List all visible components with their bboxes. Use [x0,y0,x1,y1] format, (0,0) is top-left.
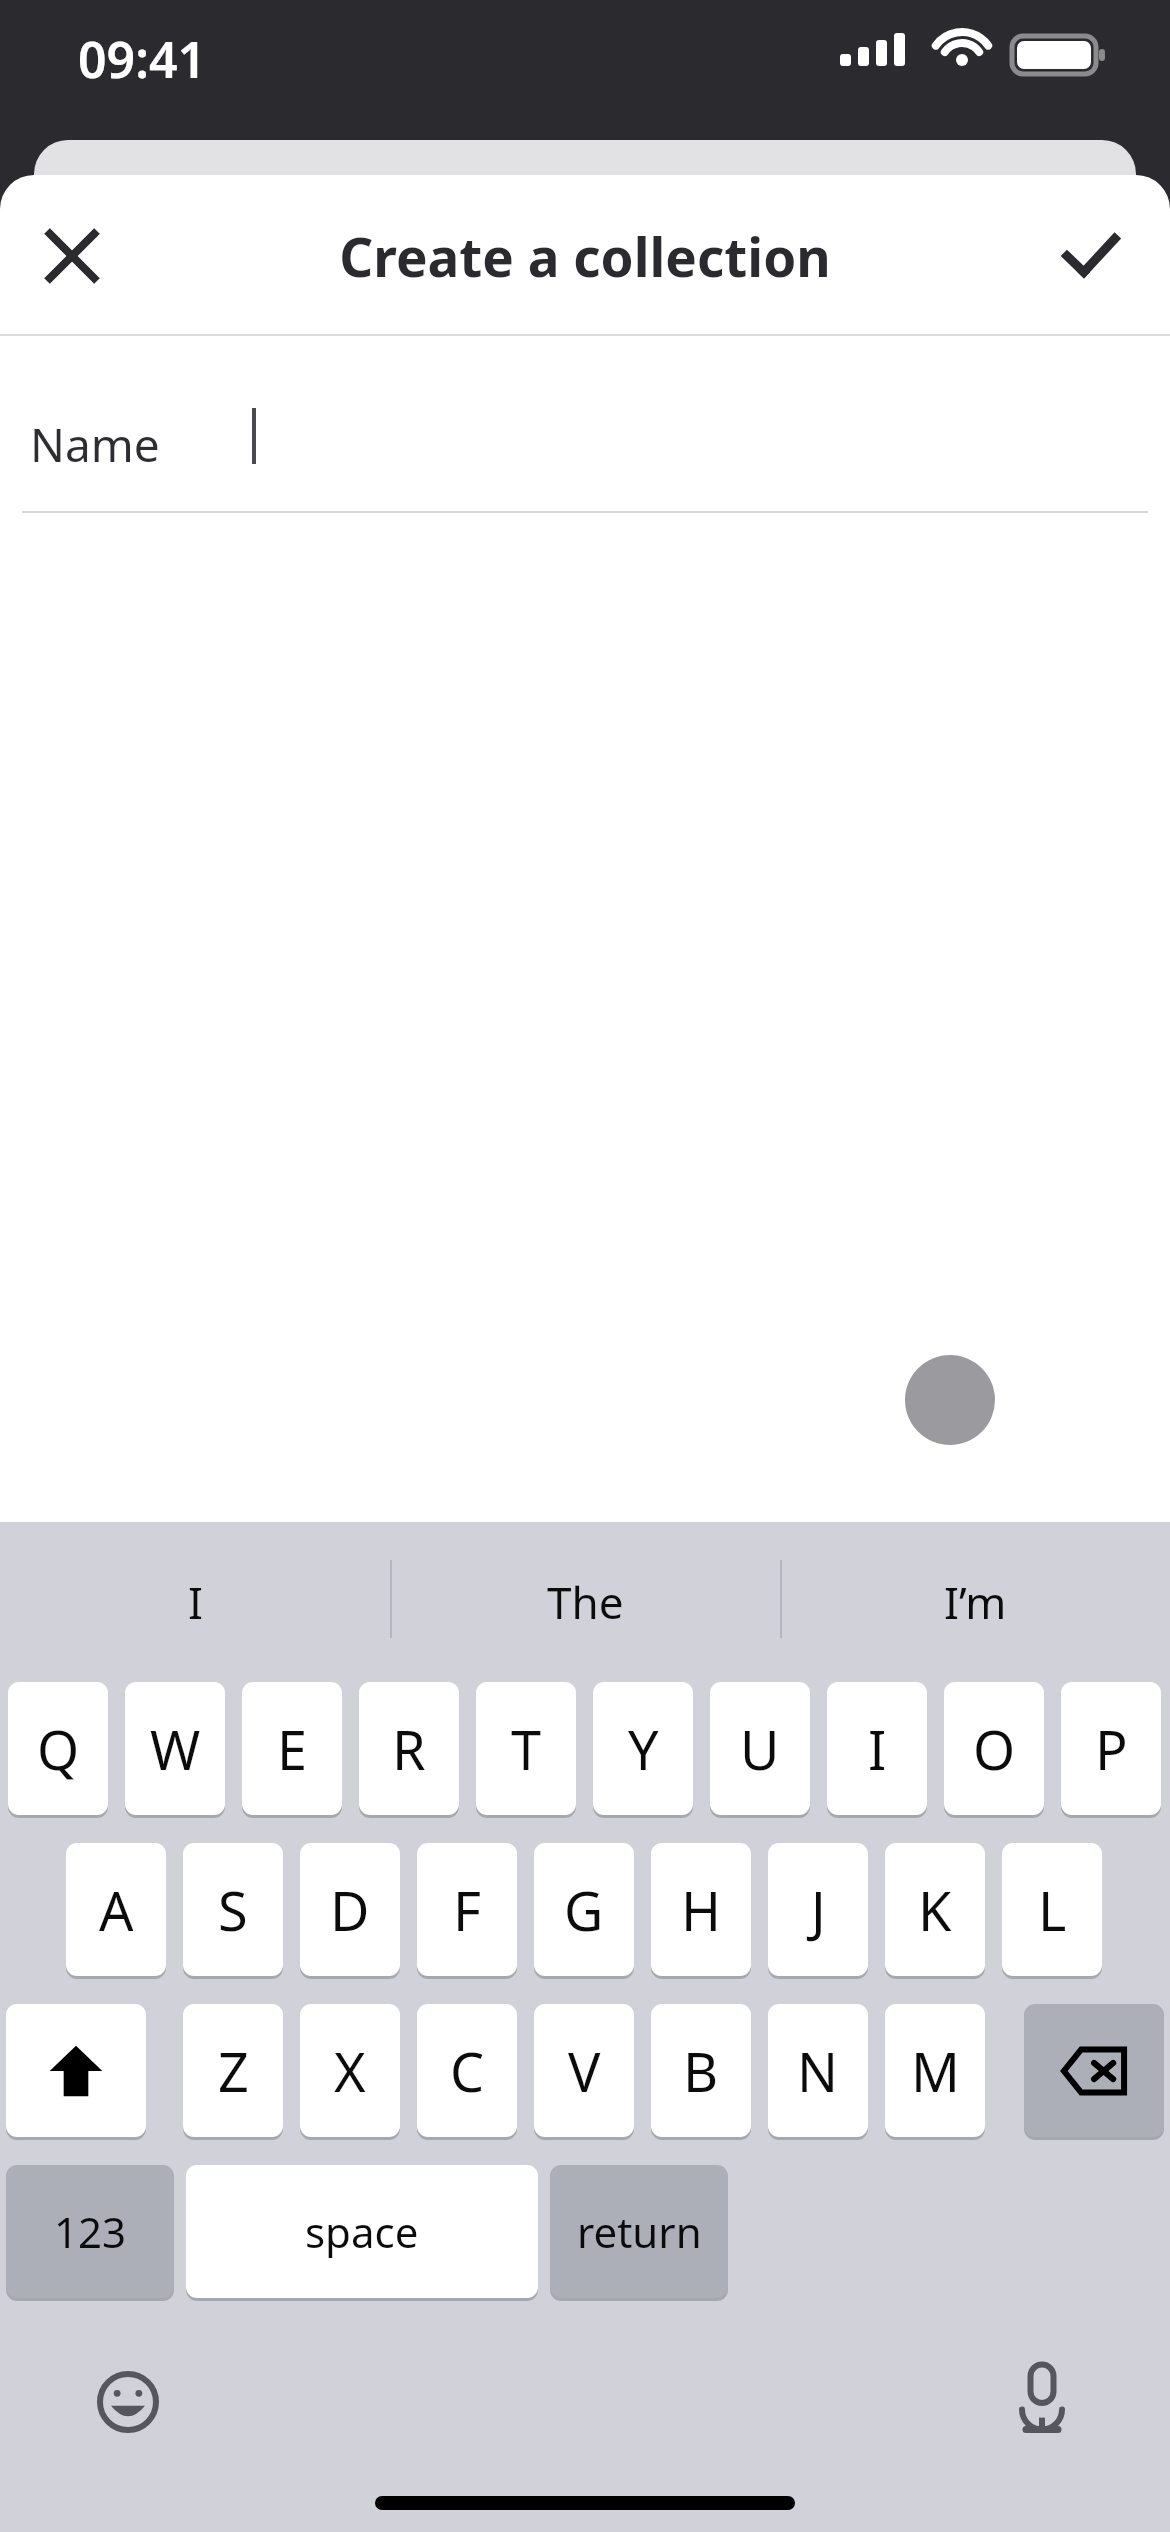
button[interactable]: I’m [780,1522,1170,1682]
button[interactable]: Close [10,194,134,318]
staticText: space [305,2203,419,2260]
staticText: Name [30,413,160,476]
staticText: T [511,1712,542,1786]
staticText: Y [628,1712,659,1786]
button[interactable]: Shift [6,2004,146,2137]
button[interactable]: M [885,2004,985,2137]
staticText: K [918,1873,952,1947]
staticText: J [811,1873,826,1947]
button[interactable]: X [300,2004,400,2137]
button[interactable]: Name [0,336,1170,513]
staticText: H [681,1873,722,1947]
staticText: Create a collection [339,220,831,292]
staticText: Z [218,2034,249,2108]
staticText: F [453,1873,482,1947]
button[interactable]: return [550,2165,728,2298]
button[interactable]: V [534,2004,634,2137]
button[interactable]: Y [593,1682,693,1815]
button[interactable]: F [417,1843,517,1976]
staticText: M [911,2034,960,2108]
button[interactable]: 123 [6,2165,174,2298]
staticText: O [973,1712,1016,1786]
staticText: D [330,1873,370,1947]
button[interactable]: Z [183,2004,283,2137]
staticText: I [868,1712,887,1786]
staticText: C [450,2034,485,2108]
button[interactable]: W [125,1682,225,1815]
button[interactable]: O [944,1682,1044,1815]
button[interactable]: H [651,1843,751,1976]
button[interactable]: I [0,1522,390,1682]
staticText: I’m [944,1572,1007,1632]
staticText: The [547,1572,624,1632]
staticText: return [577,2203,702,2260]
button[interactable]: S [183,1843,283,1976]
button[interactable]: N [768,2004,868,2137]
button[interactable]: I [827,1682,927,1815]
button[interactable]: A [66,1843,166,1976]
button[interactable]: Q [8,1682,108,1815]
staticText: 09:41 [78,25,207,93]
button[interactable]: P [1061,1682,1161,1815]
staticText: P [1095,1712,1128,1786]
staticText: E [277,1712,308,1786]
button[interactable]: Done [1028,194,1152,318]
button[interactable]: C [417,2004,517,2137]
staticText: R [392,1712,426,1786]
button[interactable]: Dictate [992,2348,1092,2448]
button[interactable]: D [300,1843,400,1976]
button[interactable]: K [885,1843,985,1976]
button[interactable]: B [651,2004,751,2137]
staticText: 123 [54,2203,127,2260]
staticText: X [334,2034,366,2108]
staticText: U [740,1712,780,1786]
staticText: G [564,1873,604,1947]
button[interactable]: T [476,1682,576,1815]
button[interactable]: J [768,1843,868,1976]
button[interactable]: R [359,1682,459,1815]
button[interactable]: Backspace [1024,2004,1164,2137]
staticText: S [218,1873,248,1947]
staticText: W [150,1712,201,1786]
staticText: B [683,2034,719,2108]
button[interactable]: L [1002,1843,1102,1976]
button[interactable]: U [710,1682,810,1815]
button[interactable]: The [390,1522,780,1682]
button[interactable]: G [534,1843,634,1976]
staticText: A [99,1873,134,1947]
staticText: I [188,1572,203,1632]
staticText: L [1038,1873,1067,1947]
button[interactable]: space [186,2165,538,2298]
button[interactable] [905,1355,995,1445]
button[interactable]: Emoji [78,2352,178,2452]
staticText: Q [37,1712,80,1786]
staticText: V [568,2034,601,2108]
button[interactable]: E [242,1682,342,1815]
staticText: N [797,2034,839,2108]
